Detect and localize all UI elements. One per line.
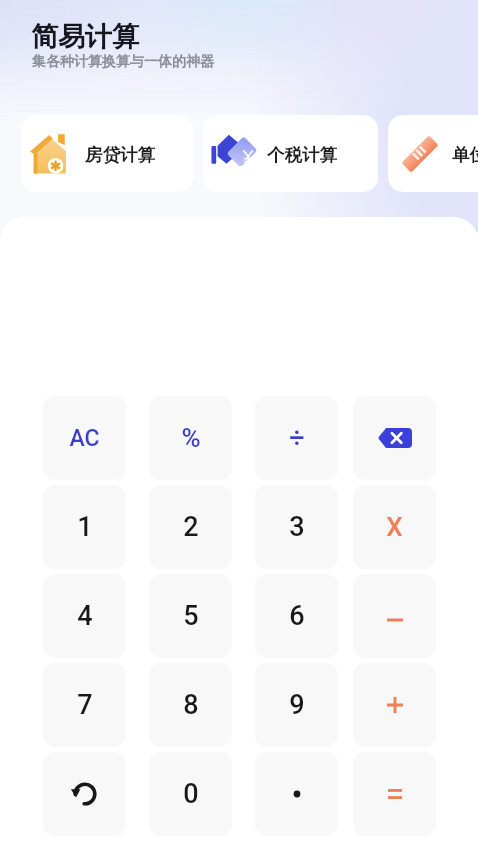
staticText: AC xyxy=(69,425,100,452)
staticText: 0 xyxy=(183,778,199,810)
button[interactable]: 个税计算 xyxy=(203,115,378,192)
button[interactable]: AC xyxy=(43,396,126,480)
button[interactable]: Decimal point xyxy=(255,752,338,836)
staticText: 5 xyxy=(183,600,199,632)
button[interactable]: Undo xyxy=(43,752,126,836)
button[interactable]: 9 xyxy=(255,663,338,747)
button[interactable]: Minus xyxy=(353,574,436,658)
button[interactable]: Equals xyxy=(353,752,436,836)
button[interactable]: Plus xyxy=(353,663,436,747)
button[interactable]: Backspace xyxy=(353,396,436,480)
staticText: 单位换算 xyxy=(452,144,478,166)
staticText: 8 xyxy=(183,689,199,721)
button[interactable]: 房贷计算 xyxy=(21,115,193,192)
staticText: 房贷计算 xyxy=(85,144,155,166)
button[interactable]: 6 xyxy=(255,574,338,658)
staticText: 3 xyxy=(289,511,305,543)
staticText: 2 xyxy=(183,511,199,543)
button[interactable]: 8 xyxy=(149,663,232,747)
staticText: 9 xyxy=(289,689,305,721)
staticText: 4 xyxy=(77,600,93,632)
button[interactable]: 2 xyxy=(149,485,232,569)
staticText: 简易计算 xyxy=(31,20,139,54)
button[interactable]: 1 xyxy=(43,485,126,569)
button[interactable]: 7 xyxy=(43,663,126,747)
button[interactable]: 5 xyxy=(149,574,232,658)
staticText: 个税计算 xyxy=(267,144,337,166)
button[interactable]: 单位换算 xyxy=(388,115,478,192)
staticText: 1 xyxy=(77,511,93,543)
button[interactable]: X xyxy=(353,485,436,569)
button[interactable]: 3 xyxy=(255,485,338,569)
staticText: X xyxy=(386,512,403,542)
staticText: % xyxy=(181,423,201,453)
staticText: 6 xyxy=(289,600,305,632)
staticText: 7 xyxy=(77,689,93,721)
button[interactable]: 0 xyxy=(149,752,232,836)
button[interactable]: ÷ xyxy=(255,396,338,480)
staticText: 集各种计算换算与一体的神器 xyxy=(32,53,214,71)
button[interactable]: % xyxy=(149,396,232,480)
button[interactable]: 4 xyxy=(43,574,126,658)
staticText: ÷ xyxy=(289,422,305,454)
